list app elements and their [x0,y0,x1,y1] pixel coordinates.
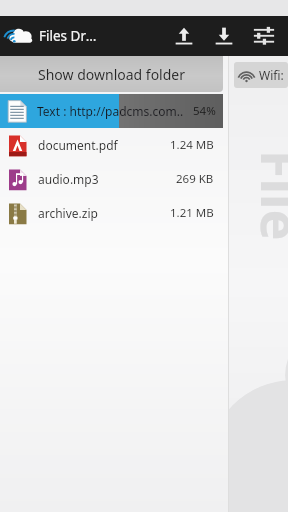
button[interactable]: audio.mp3 [0,162,228,196]
button[interactable]: Upload [164,16,204,56]
staticText: document.pdf [38,137,170,153]
staticText: 1.24 MB [170,137,214,153]
button[interactable]: document.pdf [0,128,228,162]
staticText: 54% [193,103,216,119]
button[interactable]: Wifi: [234,62,288,88]
staticText: Wifi: [259,67,284,83]
staticText: audio.mp3 [38,171,176,187]
staticText: Text : http://padcms.com.. [37,103,193,119]
staticText: 269 KB [176,171,214,187]
button[interactable]: archive.zip [0,196,228,230]
button[interactable]: Show download folder [0,56,223,92]
staticText: archive.zip [38,205,170,221]
button[interactable]: Settings [244,16,284,56]
staticText: File [246,150,288,241]
button[interactable]: Download [204,16,244,56]
button[interactable]: Text : http://padcms.com.. [0,94,223,128]
staticText: Show download folder [38,65,185,84]
staticText: Files Drag & Dr... [39,27,101,45]
staticText: 1.21 MB [170,205,214,221]
